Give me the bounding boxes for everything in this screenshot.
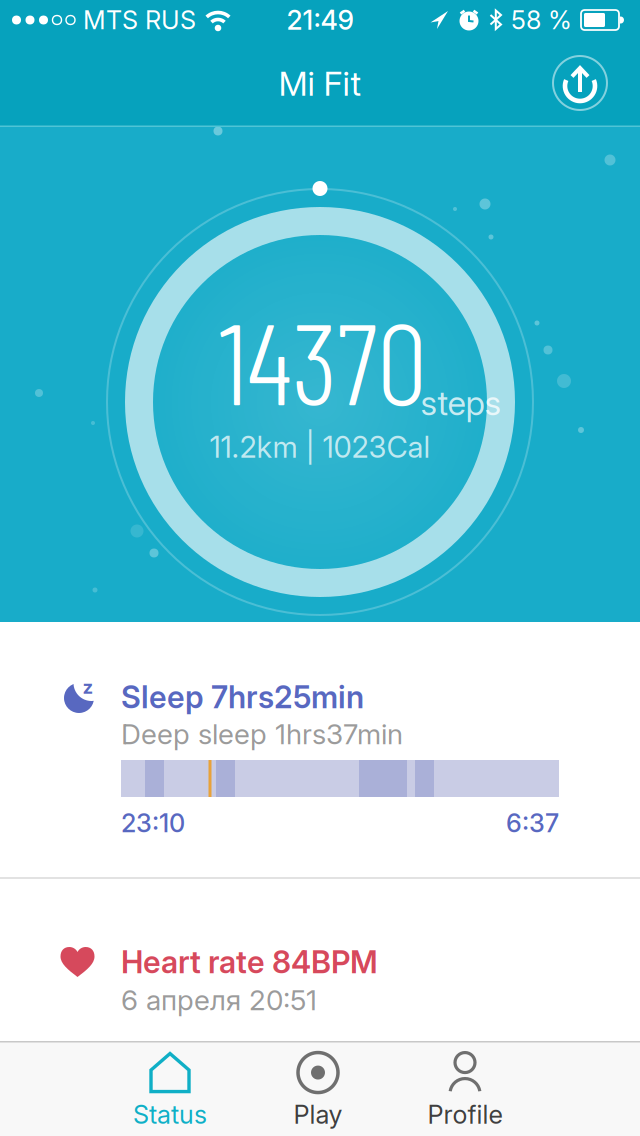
staticText: Heart rate 84BPM [121,944,378,980]
staticText: Status [133,1100,207,1129]
staticText: 21:49 [286,4,353,36]
button[interactable]: z [0,622,640,878]
staticText: Profile [427,1100,502,1129]
staticText: 6 апреля 20:51 [121,983,317,1016]
staticText: 58 % [511,5,572,35]
staticText: Play [293,1100,342,1129]
staticText: 14370 [219,292,427,428]
staticText: steps [420,383,501,423]
button[interactable]: Sync [552,55,608,111]
staticText: Deep sleep 1hrs37min [121,717,403,750]
button[interactable]: Heart rate 84BPM [0,878,640,1041]
staticText: 6:37 [506,808,559,838]
staticText: MTS RUS [83,5,196,35]
button[interactable]: Play [248,1046,388,1134]
staticText: 11.2km | 1023Cal [209,430,430,464]
button[interactable]: Status [100,1046,240,1134]
staticText: z [82,676,93,698]
button[interactable]: Profile [395,1046,535,1134]
staticText: Mi Fit [278,64,361,103]
staticText: Sleep 7hrs25min [121,679,364,715]
staticText: 23:10 [121,808,185,838]
